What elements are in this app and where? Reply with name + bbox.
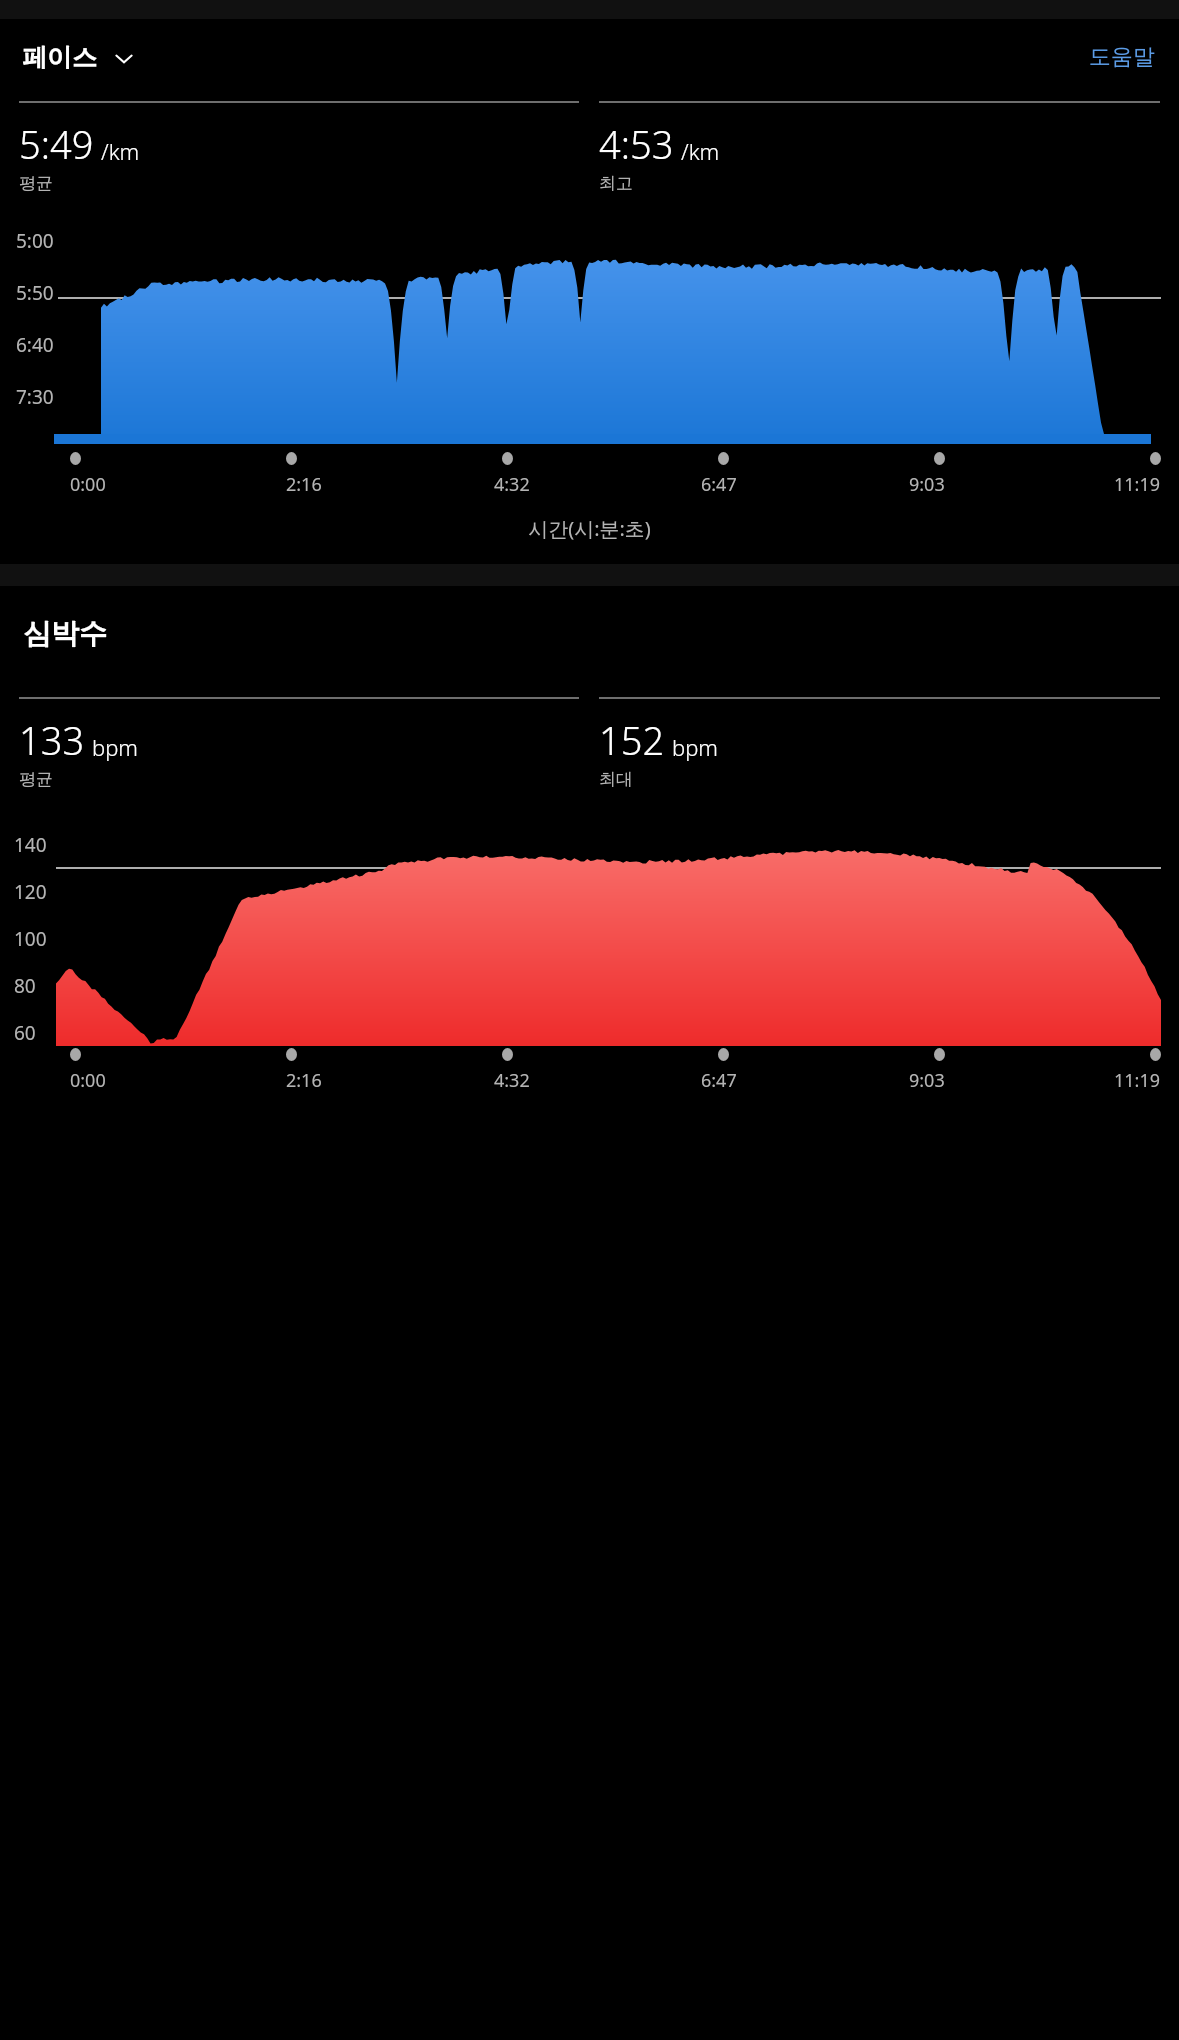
button[interactable]: 152	[599, 697, 1160, 790]
staticText: 5:49	[19, 118, 94, 170]
staticText: 11:19	[1114, 1068, 1161, 1093]
staticText: 2:16	[286, 1068, 322, 1093]
staticText: 0:00	[70, 1068, 106, 1093]
staticText: /km	[681, 136, 720, 166]
staticText: 120	[14, 879, 47, 905]
staticText: 4:53	[599, 118, 674, 170]
staticText: 4:32	[494, 1068, 530, 1093]
staticText: 최대	[599, 769, 633, 790]
staticText: 2:16	[286, 472, 322, 497]
staticText: bpm	[92, 732, 139, 762]
staticText: 5:50	[16, 280, 54, 306]
staticText: 133	[19, 714, 85, 766]
staticText: 80	[14, 973, 36, 999]
staticText: 평균	[19, 173, 53, 194]
button[interactable]: 심박수	[19, 612, 111, 655]
button[interactable]: 4:53	[599, 101, 1160, 194]
staticText: 4:32	[494, 472, 530, 497]
staticText: 최고	[599, 173, 633, 194]
staticText: bpm	[672, 732, 719, 762]
staticText: 100	[14, 926, 47, 952]
staticText: 9:03	[909, 472, 945, 497]
button[interactable]: 도움말	[1079, 33, 1165, 81]
staticText: /km	[101, 136, 140, 166]
staticText: 5:00	[16, 228, 54, 254]
staticText: 6:47	[701, 1068, 737, 1093]
staticText: 도움말	[1089, 43, 1155, 71]
staticText: 11:19	[1114, 472, 1161, 497]
staticText: 페이스	[22, 42, 97, 73]
staticText: 140	[14, 832, 47, 858]
button[interactable]: 페이스	[18, 36, 140, 79]
staticText: 시간(시:분:초)	[0, 515, 1179, 542]
button[interactable]: 133	[19, 697, 579, 790]
button[interactable]: 5:49	[19, 101, 579, 194]
staticText: 152	[599, 714, 665, 766]
staticText: 평균	[19, 769, 53, 790]
staticText: 60	[14, 1020, 36, 1046]
staticText: 7:30	[16, 384, 54, 410]
staticText: 6:47	[701, 472, 737, 497]
staticText: 0:00	[70, 472, 106, 497]
staticText: 심박수	[23, 616, 107, 651]
other: Change metric	[112, 46, 136, 70]
staticText: 9:03	[909, 1068, 945, 1093]
staticText: 6:40	[16, 332, 54, 358]
